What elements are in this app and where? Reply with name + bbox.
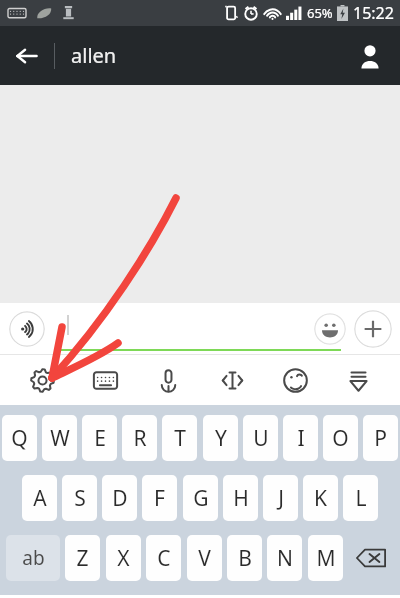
staticText: 65% xyxy=(307,4,333,22)
button[interactable]: V xyxy=(187,535,222,581)
staticText: R xyxy=(133,424,147,453)
button[interactable]: J xyxy=(263,475,298,521)
button[interactable]: Add attachment xyxy=(354,310,392,348)
staticText: Z xyxy=(76,544,89,573)
staticText: G xyxy=(193,484,209,513)
button[interactable]: Keyboard xyxy=(80,355,130,405)
button[interactable]: X xyxy=(106,535,141,581)
button[interactable]: H xyxy=(223,475,258,521)
staticText: X xyxy=(117,544,130,573)
staticText: T xyxy=(174,424,186,453)
button[interactable]: F xyxy=(142,475,177,521)
staticText: H xyxy=(233,484,249,513)
staticText: J xyxy=(278,484,284,513)
button[interactable]: Backspace xyxy=(348,535,394,581)
button[interactable]: Stickers xyxy=(270,355,320,405)
button[interactable]: L xyxy=(343,475,378,521)
staticText: W xyxy=(50,424,70,453)
staticText: O xyxy=(332,424,349,453)
button[interactable]: Q xyxy=(2,415,37,461)
button[interactable]: I xyxy=(283,415,318,461)
button[interactable]: ab xyxy=(6,535,60,581)
button[interactable]: Back xyxy=(0,26,54,85)
button[interactable]: C xyxy=(146,535,181,581)
button[interactable]: Contact profile xyxy=(340,26,400,85)
staticText: F xyxy=(154,484,165,513)
staticText: U xyxy=(253,424,269,453)
staticText: Q xyxy=(11,424,28,453)
staticText: E xyxy=(94,424,106,453)
button[interactable]: Text tool xyxy=(207,355,257,405)
staticText: Y xyxy=(215,424,227,453)
button[interactable]: N xyxy=(267,535,302,581)
button[interactable]: W xyxy=(42,415,77,461)
staticText: I xyxy=(297,424,305,453)
staticText: D xyxy=(112,484,128,513)
button[interactable]: Voice input xyxy=(9,311,45,347)
button[interactable]: Y xyxy=(203,415,238,461)
button[interactable]: R xyxy=(122,415,157,461)
button[interactable]: K xyxy=(303,475,338,521)
button[interactable]: T xyxy=(162,415,197,461)
button[interactable]: O xyxy=(323,415,358,461)
staticText: ab xyxy=(22,545,45,571)
button[interactable]: S xyxy=(62,475,97,521)
staticText: L xyxy=(355,484,367,513)
button[interactable]: Settings xyxy=(17,355,67,405)
button[interactable]: Voice message xyxy=(143,355,193,405)
staticText: P xyxy=(374,424,387,453)
button[interactable]: B xyxy=(227,535,262,581)
button[interactable]: Z xyxy=(65,535,100,581)
staticText: allen xyxy=(71,42,117,69)
staticText: C xyxy=(157,544,171,573)
staticText: S xyxy=(74,484,86,513)
staticText: M xyxy=(316,544,336,573)
button[interactable]: P xyxy=(363,415,398,461)
staticText: K xyxy=(314,484,327,513)
button[interactable]: A xyxy=(22,475,57,521)
staticText: B xyxy=(238,544,252,573)
button[interactable]: M xyxy=(308,535,343,581)
button[interactable]: E xyxy=(82,415,117,461)
staticText: A xyxy=(33,484,47,513)
staticText: N xyxy=(277,544,293,573)
staticText: 15:22 xyxy=(353,2,394,24)
button[interactable]: D xyxy=(102,475,137,521)
button[interactable]: Collapse keyboard xyxy=(333,355,383,405)
button[interactable]: G xyxy=(183,475,218,521)
staticText: V xyxy=(198,544,211,573)
button[interactable]: U xyxy=(243,415,278,461)
button[interactable]: Emoji xyxy=(314,313,346,345)
